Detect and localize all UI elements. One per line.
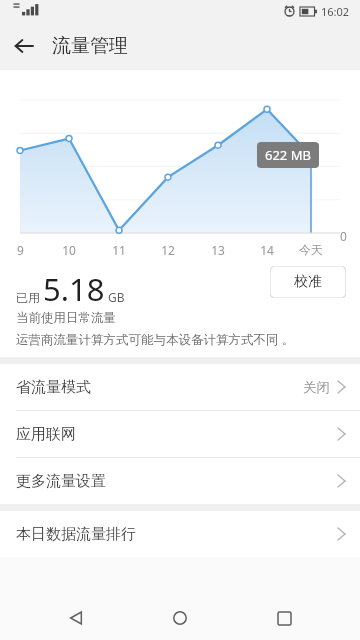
staticText: 13 — [211, 242, 225, 258]
button[interactable]: Home — [152, 596, 208, 640]
staticText: 流量管理 — [52, 34, 128, 58]
staticText: 9 — [17, 242, 24, 258]
staticText: 16:02 — [321, 4, 350, 19]
staticText: 今天 — [299, 242, 323, 257]
button[interactable]: 本日数据流量排行 — [0, 511, 360, 557]
staticText: 关闭 — [303, 379, 330, 396]
staticText: GB — [108, 289, 125, 305]
staticText: 当前使用日常流量 — [16, 310, 116, 326]
staticText: 更多流量设置 — [16, 472, 106, 491]
staticText: 11 — [112, 242, 126, 258]
staticText: 校准 — [294, 273, 322, 291]
staticText: 省流量模式 — [16, 378, 91, 397]
button[interactable]: Back — [48, 596, 104, 640]
button[interactable]: Recent apps — [256, 596, 312, 640]
staticText: 运营商流量计算方式可能与本设备计算方式不同 。 — [16, 331, 295, 348]
staticText: 已用 — [16, 290, 40, 305]
staticText: 本日数据流量排行 — [16, 525, 136, 544]
staticText: 5.18 — [43, 268, 105, 310]
staticText: 应用联网 — [16, 425, 76, 444]
staticText: 12 — [161, 242, 175, 258]
staticText: 0 — [340, 228, 347, 244]
button[interactable]: 更多流量设置 — [0, 458, 360, 504]
button[interactable]: 校准 — [270, 266, 346, 298]
staticText: 622 MB — [265, 146, 311, 164]
button[interactable]: 省流量模式 — [0, 364, 360, 410]
button[interactable]: Back — [0, 22, 48, 70]
staticText: 14 — [260, 242, 274, 258]
staticText: 10 — [62, 242, 76, 258]
button[interactable]: 应用联网 — [0, 411, 360, 457]
